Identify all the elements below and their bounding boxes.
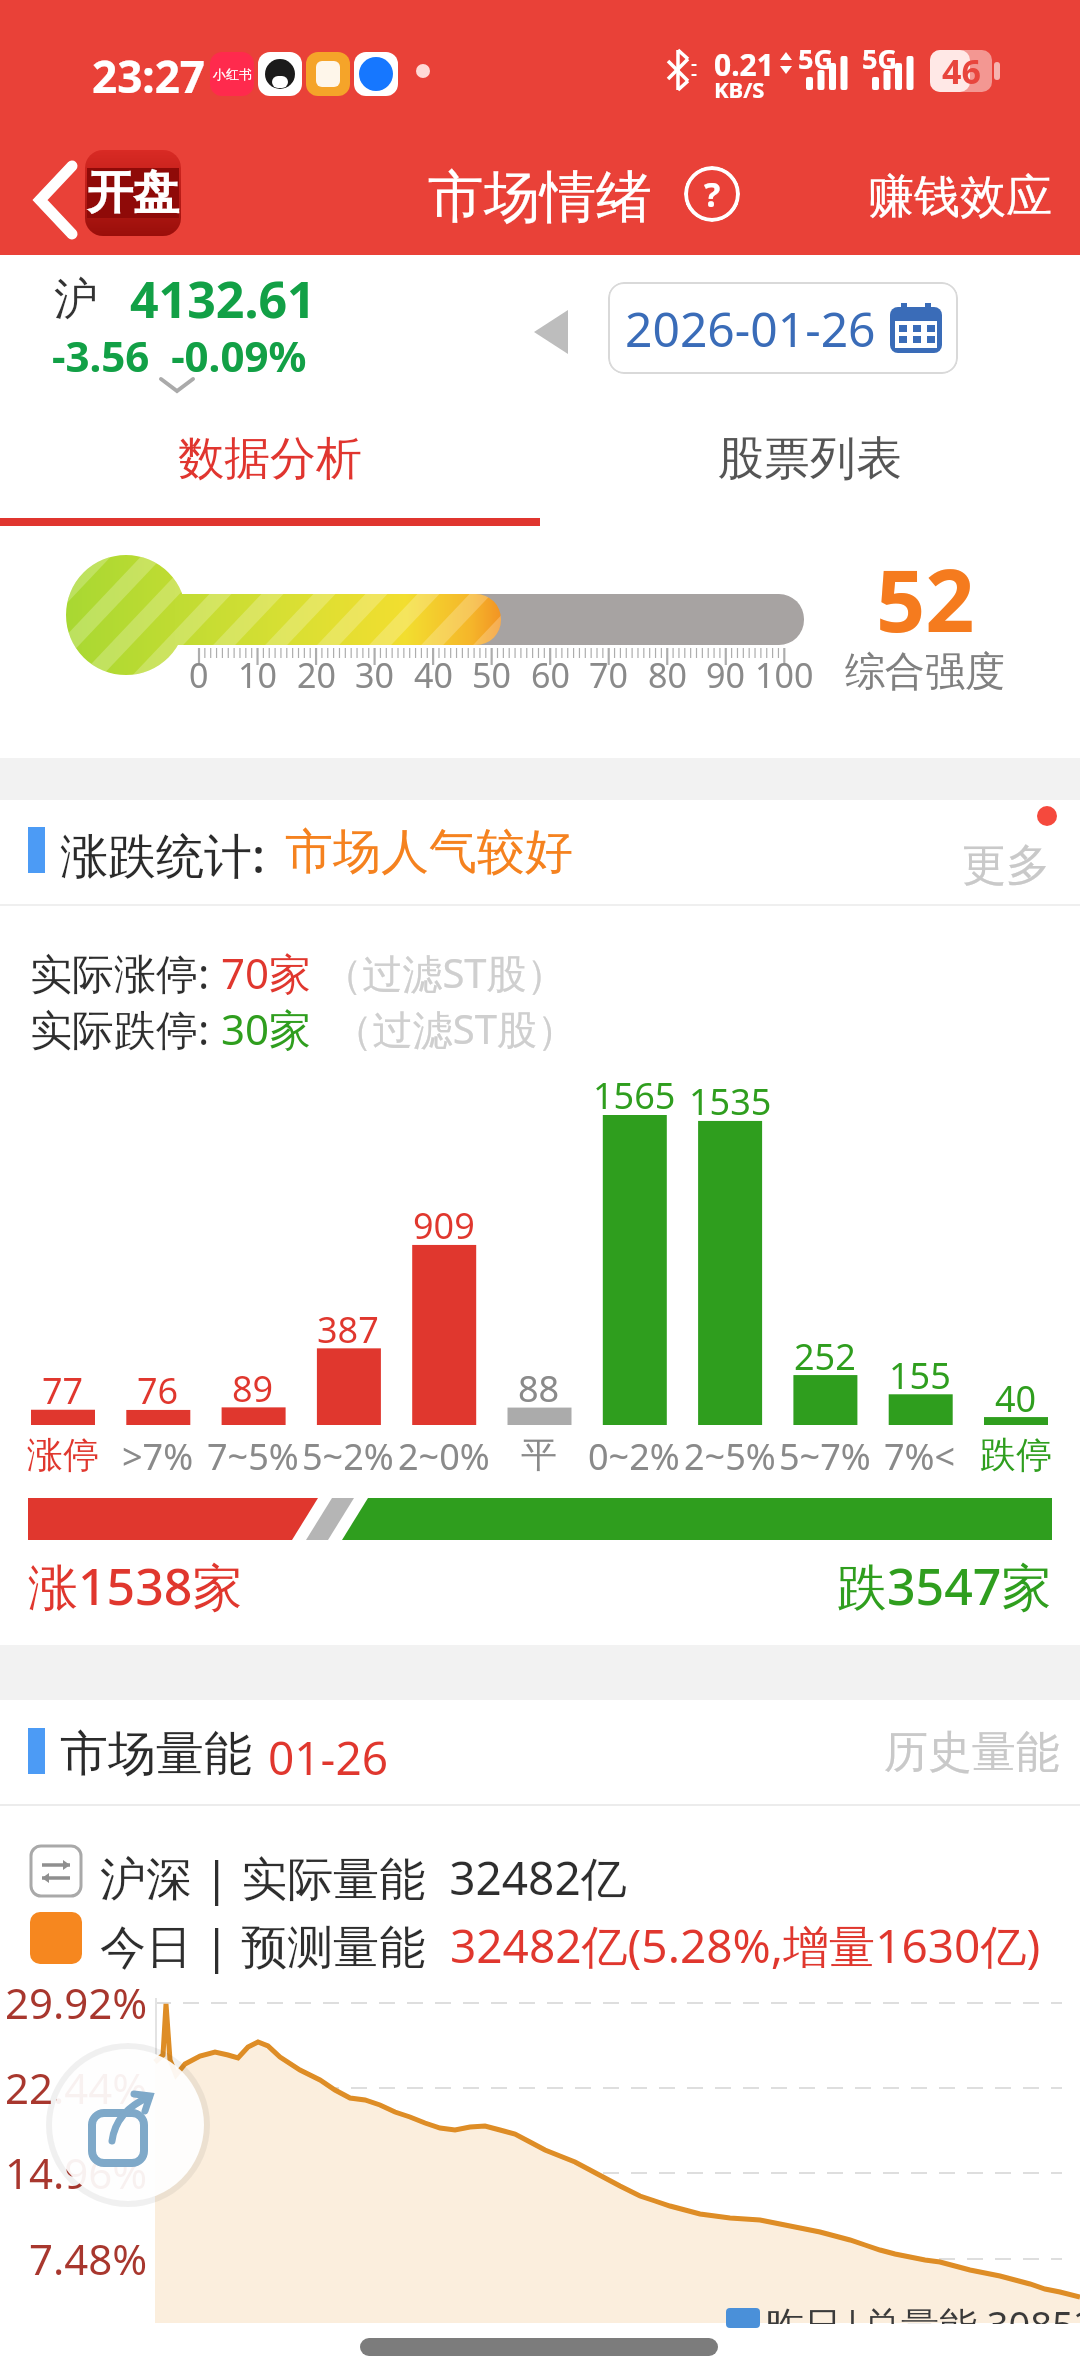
staticText: 小红书 xyxy=(213,66,252,82)
button[interactable] xyxy=(532,308,570,356)
staticText: 2~5% xyxy=(684,1432,776,1481)
staticText: 涨跌统计: xyxy=(60,822,266,888)
staticText: 5G xyxy=(798,40,833,77)
staticText: 涨停 xyxy=(27,1432,99,1477)
button[interactable]: 赚钱效应 xyxy=(860,162,1060,232)
staticText: 387 xyxy=(317,1305,379,1354)
staticText: -3.56 -0.09% xyxy=(52,327,307,384)
staticText: 29.92% xyxy=(5,1974,148,2031)
staticText: 市场人气较好 xyxy=(285,822,573,882)
staticText: 跌停 xyxy=(980,1432,1052,1477)
staticText: 赚钱效应 xyxy=(868,168,1052,226)
staticText: 40 xyxy=(995,1374,1037,1423)
staticText: 32482亿(5.28%,增量1630亿) xyxy=(450,1914,1041,1977)
staticText: 40 xyxy=(414,652,453,698)
staticText: 1535 xyxy=(689,1077,772,1126)
staticText: 70家 xyxy=(221,944,312,1001)
staticText: 88 xyxy=(518,1364,560,1413)
staticText: 跌3547家 xyxy=(837,1552,1052,1620)
staticText: 30 xyxy=(355,652,394,698)
staticText: 开盘 xyxy=(87,164,179,222)
staticText: 252 xyxy=(794,1332,856,1381)
staticText: 今日 | 预测量能 xyxy=(100,1914,450,1977)
button[interactable]: 历史量能 xyxy=(860,1720,1060,1784)
staticText: 4132.61 xyxy=(130,265,316,333)
staticText: 5G xyxy=(862,40,897,77)
staticText: 涨1538家 xyxy=(28,1552,243,1620)
staticText: 90 xyxy=(706,652,745,698)
staticText: 5~7% xyxy=(779,1432,871,1481)
staticText: 数据分析 xyxy=(178,430,362,488)
staticText: 市场情绪 xyxy=(428,162,652,233)
staticText: 22.44% xyxy=(5,2059,148,2116)
staticText: KB/S xyxy=(714,74,765,104)
staticText: 7~5% xyxy=(207,1432,299,1481)
staticText: 76 xyxy=(137,1366,179,1415)
staticText: 沪 xyxy=(54,272,98,327)
staticText: 2026-01-26 xyxy=(625,296,876,361)
staticText: 0.21 xyxy=(714,44,774,85)
staticText: 50 xyxy=(472,652,511,698)
staticText: 0 xyxy=(189,652,209,698)
button[interactable]: ? xyxy=(684,166,740,222)
staticText: ? xyxy=(704,171,721,217)
staticText: 80 xyxy=(648,652,687,698)
staticText: 沪深 | 实际量能 32482亿 xyxy=(100,1846,627,1909)
staticText: 60 xyxy=(531,652,570,698)
staticText: 历史量能 xyxy=(884,1725,1060,1780)
staticText: 市场量能 xyxy=(60,1724,252,1784)
staticText: （过滤ST股） xyxy=(312,945,567,1000)
staticText: 1565 xyxy=(593,1071,676,1120)
staticText: 23:27 xyxy=(92,46,206,106)
staticText: 100 xyxy=(755,652,814,698)
staticText: 89 xyxy=(232,1364,274,1413)
button[interactable] xyxy=(52,2049,204,2201)
staticText: 实际跌停: xyxy=(30,1000,221,1057)
staticText: 5~2% xyxy=(302,1432,394,1481)
staticText: 综合强度 xyxy=(845,646,1005,696)
staticText: 2~0% xyxy=(398,1432,490,1481)
button[interactable]: 数据分析 xyxy=(0,400,540,518)
staticText: 01-26 xyxy=(268,1726,389,1789)
staticText: 7%< xyxy=(884,1432,956,1481)
staticText: 昨日|总量能 30852亿 xyxy=(766,2298,1080,2324)
staticText: 更多 xyxy=(962,838,1050,893)
staticText: （过滤ST股） xyxy=(312,1001,577,1056)
staticText: 52 xyxy=(876,540,975,657)
staticText: 30家 xyxy=(221,1000,312,1057)
button[interactable]: 2026-01-26 xyxy=(608,282,958,374)
staticText: >7% xyxy=(122,1432,194,1481)
staticText: 0~2% xyxy=(588,1432,680,1481)
staticText: 实际涨停: xyxy=(30,944,221,1001)
staticText: 909 xyxy=(413,1201,475,1250)
staticText: 70 xyxy=(589,652,628,698)
button[interactable]: 股票列表 xyxy=(540,400,1080,518)
staticText: 46 xyxy=(942,48,981,94)
staticText: 77 xyxy=(42,1366,84,1415)
staticText: 7.48% xyxy=(29,2230,148,2287)
button[interactable]: 更多 xyxy=(962,838,1062,894)
button[interactable] xyxy=(30,160,86,240)
staticText: 14.96% xyxy=(5,2144,148,2201)
staticText: 股票列表 xyxy=(718,430,902,488)
staticText: 20 xyxy=(297,652,336,698)
staticText: 10 xyxy=(238,652,277,698)
staticText: 平 xyxy=(521,1432,557,1477)
staticText: 155 xyxy=(889,1351,951,1400)
